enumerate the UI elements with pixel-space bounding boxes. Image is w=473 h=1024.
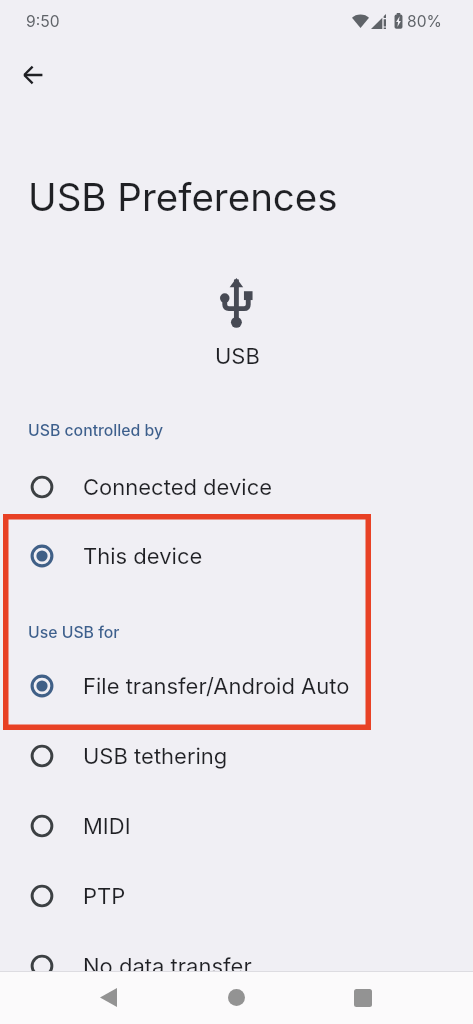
staticText: 9:50 — [26, 12, 60, 31]
button[interactable]: Back — [66, 971, 151, 1024]
button[interactable]: No data transfer — [0, 931, 473, 1001]
staticText: File transfer/Android Auto — [83, 673, 350, 700]
staticText: USB tethering — [83, 743, 228, 770]
staticText: No data transfer — [83, 953, 252, 980]
staticText: 80% — [407, 12, 442, 31]
button[interactable]: Navigate up — [11, 53, 55, 97]
button[interactable]: File transfer/Android Auto — [0, 651, 473, 721]
button[interactable]: Connected device — [0, 452, 473, 522]
staticText: USB Preferences — [28, 174, 338, 221]
button[interactable]: MIDI — [0, 791, 473, 861]
button[interactable]: Recent apps — [320, 971, 405, 1024]
button[interactable]: PTP — [0, 861, 473, 931]
button[interactable]: This device — [0, 521, 473, 591]
staticText: USB controlled by — [28, 421, 164, 440]
staticText: Connected device — [83, 474, 273, 501]
button[interactable]: Home — [194, 971, 279, 1024]
staticText: Use USB for — [28, 623, 120, 642]
staticText: MIDI — [83, 813, 131, 840]
staticText: PTP — [83, 883, 126, 910]
staticText: USB — [215, 343, 260, 370]
staticText: This device — [83, 543, 203, 570]
button[interactable]: USB tethering — [0, 721, 473, 791]
